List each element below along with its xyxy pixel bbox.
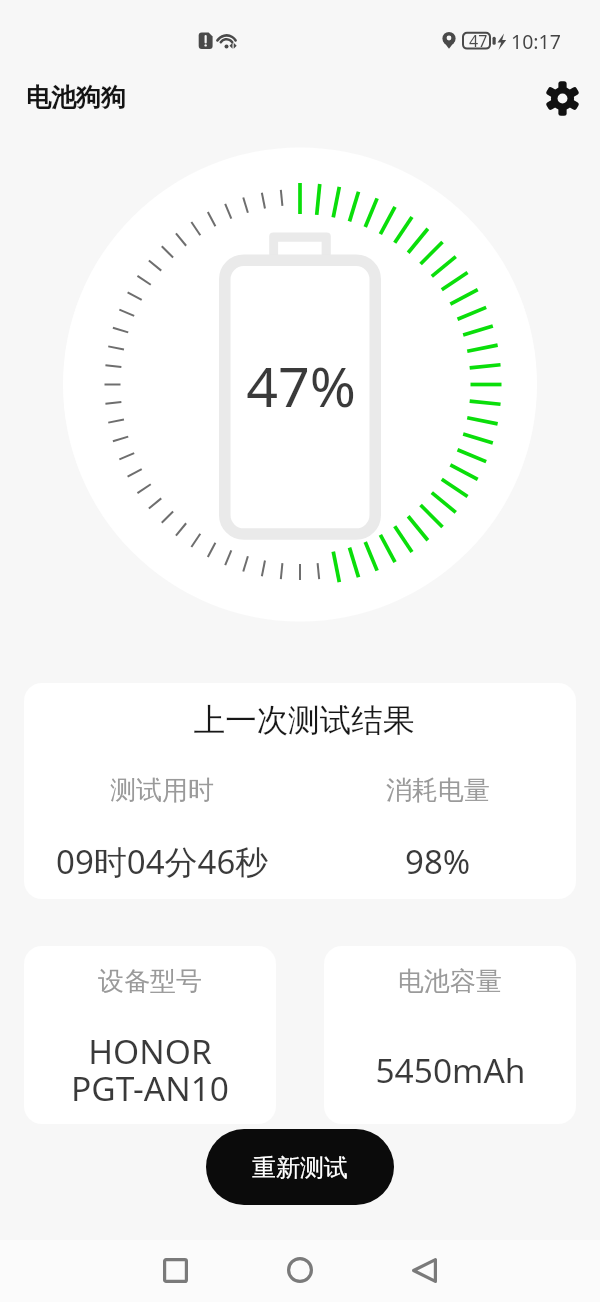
button[interactable]: Recents (131, 1226, 219, 1302)
staticText: 5450mAh (375, 1047, 526, 1093)
staticText: 10:17 (511, 28, 561, 55)
staticText: 47 (469, 30, 488, 52)
staticText: 消耗电量 (386, 774, 490, 807)
staticText: HONOR PGT-AN10 (71, 1028, 229, 1111)
button[interactable]: 电池容量 (324, 946, 576, 1124)
staticText: 47% (1, 348, 600, 424)
button[interactable]: Settings (536, 72, 588, 124)
staticText: 98% (405, 839, 471, 884)
button[interactable]: 设备型号 (24, 946, 276, 1124)
staticText: 重新测试 (252, 1153, 348, 1183)
button[interactable]: Home (256, 1226, 344, 1302)
staticText: 电池狗狗 (26, 82, 126, 113)
staticText: 上一次测试结果 (28, 701, 576, 741)
staticText: 设备型号 (98, 965, 202, 998)
button[interactable]: 重新测试 (206, 1129, 394, 1205)
button[interactable]: Back (380, 1226, 468, 1302)
staticText: 电池容量 (398, 965, 502, 998)
staticText: 测试用时 (110, 774, 214, 807)
staticText: 09时04分46秒 (56, 839, 269, 884)
button[interactable]: 上一次测试结果 (24, 683, 576, 899)
